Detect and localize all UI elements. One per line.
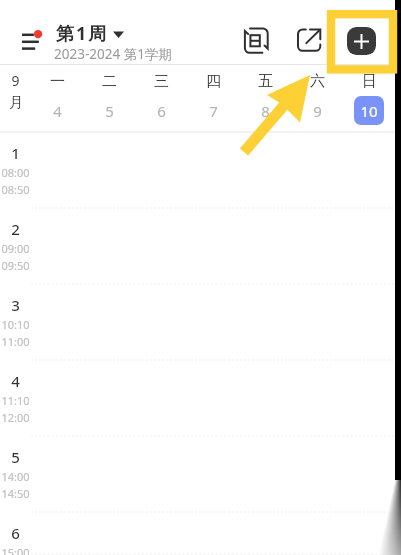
staticText: 09:50 [1, 258, 30, 273]
button[interactable]: 三 [135, 65, 187, 131]
staticText: 11:10 [1, 393, 30, 408]
staticText: 2 [11, 219, 20, 239]
staticText: 14:50 [1, 486, 30, 501]
staticText: 日 [362, 72, 377, 91]
staticText: 15:00 [1, 545, 30, 555]
button[interactable]: 六 [291, 65, 343, 131]
staticText: 4 [11, 371, 20, 391]
staticText: 08:00 [1, 165, 30, 180]
staticText: 12:00 [1, 410, 30, 425]
staticText: 三 [154, 72, 169, 91]
staticText: 14:00 [1, 469, 30, 484]
staticText: 3 [11, 295, 20, 315]
button[interactable]: Menu [10, 21, 46, 57]
staticText: 10:10 [1, 317, 30, 332]
button[interactable]: 一 [31, 65, 83, 131]
button[interactable]: 四 [187, 65, 239, 131]
staticText: 7 [209, 101, 218, 121]
staticText: 1 [11, 143, 20, 163]
staticText: 五 [258, 72, 273, 91]
staticText: 5 [11, 447, 20, 467]
staticText: 月 [9, 94, 23, 112]
staticText: 四 [206, 72, 221, 91]
staticText: 6 [11, 523, 20, 543]
staticText: 6 [157, 101, 166, 121]
staticText: 9 [11, 71, 20, 90]
button[interactable]: 五 [239, 65, 291, 131]
button[interactable]: Switch view [240, 24, 272, 56]
staticText: 2023-2024 第1学期 [54, 45, 172, 63]
staticText: 二 [102, 72, 117, 91]
staticText: 5 [105, 101, 114, 121]
staticText: 第1周 [56, 21, 109, 46]
staticText: 六 [310, 72, 325, 91]
staticText: 4 [53, 101, 62, 121]
button[interactable]: 二 [83, 65, 135, 131]
staticText: 08:50 [1, 182, 30, 197]
button[interactable]: Add [347, 27, 376, 55]
staticText: 一 [50, 72, 65, 91]
button[interactable]: 日 [343, 65, 395, 131]
staticText: 9 [313, 101, 322, 121]
staticText: 10 [360, 101, 378, 121]
staticText: 09:00 [1, 241, 30, 256]
button[interactable]: Share [291, 24, 323, 56]
staticText: 11:00 [1, 334, 30, 349]
staticText: 8 [261, 101, 270, 121]
